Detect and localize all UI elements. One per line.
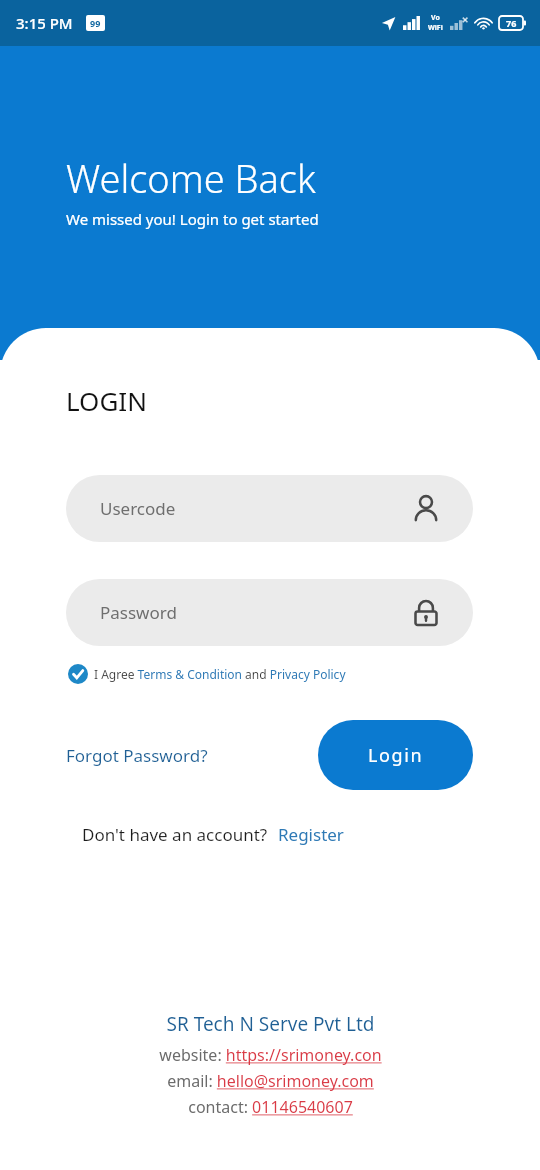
staticText: Password — [100, 601, 177, 624]
staticText: Welcome Back — [66, 152, 316, 204]
staticText: Forgot Password? — [66, 744, 208, 767]
staticText: I Agree Terms & Condition and Privacy Po… — [94, 666, 346, 682]
button[interactable]: email: hello@srimoney.com — [167, 1068, 374, 1094]
staticText: Vo — [431, 13, 440, 23]
staticText: Login — [368, 743, 424, 768]
button[interactable]: I Agree Terms & Condition and Privacy Po… — [68, 664, 346, 684]
staticText: email: hello@srimoney.com — [167, 1070, 374, 1092]
staticText: WiFi — [428, 23, 443, 33]
staticText: Register — [278, 823, 344, 846]
button[interactable]: Login — [318, 720, 473, 790]
other: Password icon — [411, 598, 441, 628]
staticText: 76 — [506, 17, 517, 29]
staticText: Usercode — [100, 497, 176, 520]
button[interactable]: Usercode — [66, 475, 473, 542]
button[interactable]: Register — [278, 823, 344, 846]
staticText: 99 — [90, 17, 101, 29]
button[interactable]: contact: 01146540607 — [188, 1094, 353, 1120]
staticText: website: https://srimoney.con — [159, 1044, 382, 1066]
staticText: LOGIN — [66, 383, 147, 418]
staticText: 3:15 PM — [16, 13, 73, 33]
button[interactable]: Password — [66, 579, 473, 646]
staticText: Don't have an account? — [82, 823, 268, 846]
other: User icon — [411, 494, 441, 524]
staticText: contact: 01146540607 — [188, 1096, 353, 1118]
staticText: SR Tech N Serve Pvt Ltd — [166, 1011, 375, 1037]
button[interactable]: website: https://srimoney.con — [159, 1042, 382, 1068]
staticText: We missed you! Login to get started — [66, 209, 319, 229]
button[interactable]: Forgot Password? — [66, 736, 208, 775]
